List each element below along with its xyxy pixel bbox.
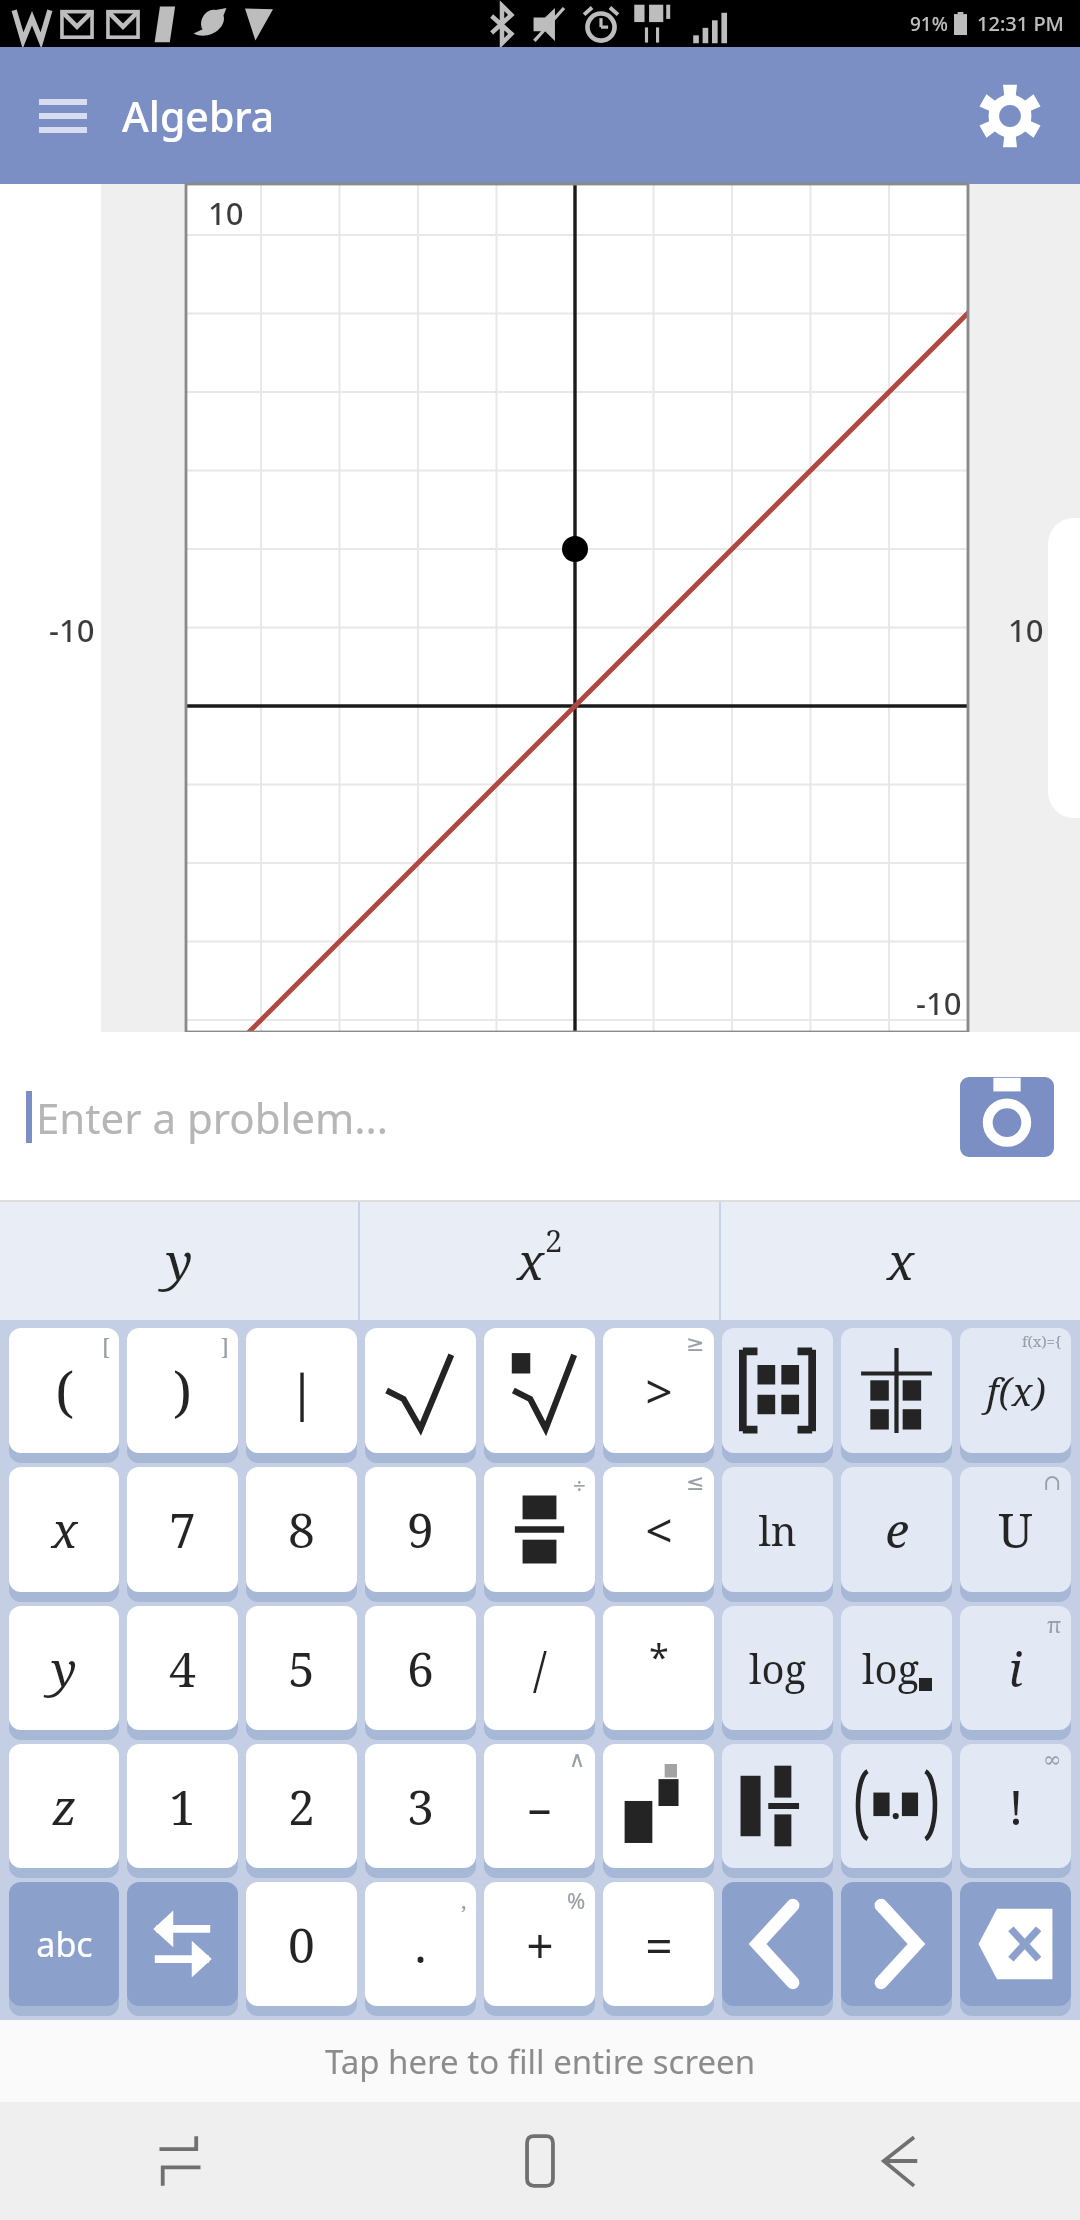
button[interactable]: 3 <box>365 1744 476 1868</box>
button[interactable]: Tap here to fill entire screen <box>0 2020 1080 2102</box>
button[interactable]: Scan problem with camera <box>960 1077 1054 1157</box>
staticText: 5 <box>288 1636 315 1701</box>
staticText: ( <box>55 1354 74 1428</box>
staticText: log <box>862 1641 919 1695</box>
staticText: 7 <box>169 1497 196 1562</box>
button[interactable]: Settings <box>966 72 1054 160</box>
staticText: 9 <box>407 1497 434 1562</box>
staticText: z <box>52 1774 77 1839</box>
staticText: ∧ <box>569 1747 586 1773</box>
button[interactable]: 8 <box>246 1467 357 1592</box>
button[interactable]: Enter a problem... <box>0 1032 1080 1202</box>
button[interactable]: log <box>722 1606 833 1730</box>
staticText: % <box>567 1885 586 1915</box>
button[interactable]: ÷ <box>484 1467 595 1592</box>
button[interactable]: , <box>365 1882 476 2006</box>
button[interactable]: Back <box>720 2102 1080 2220</box>
button[interactable]: 2 <box>246 1744 357 1868</box>
staticText: π <box>1047 1609 1062 1639</box>
staticText: > <box>645 1358 673 1423</box>
staticText: = <box>645 1912 673 1977</box>
staticText: – <box>527 1774 552 1839</box>
button[interactable]: x <box>721 1202 1080 1320</box>
staticText: 3 <box>407 1774 434 1839</box>
button[interactable] <box>841 1882 952 2006</box>
button[interactable]: Home <box>360 2102 720 2220</box>
button[interactable]: ln <box>722 1467 833 1592</box>
button[interactable]: z <box>9 1744 119 1868</box>
button[interactable]: Open navigation menu <box>26 79 100 153</box>
staticText: e <box>885 1497 909 1562</box>
button[interactable]: 4 <box>127 1606 238 1730</box>
button[interactable]: π <box>960 1606 1071 1730</box>
button[interactable] <box>841 1328 952 1453</box>
staticText: x <box>51 1497 78 1562</box>
button[interactable] <box>722 1744 833 1868</box>
staticText: 1 <box>169 1774 196 1839</box>
staticText: ∩ <box>1043 1470 1062 1496</box>
staticText: f(x) <box>986 1365 1046 1417</box>
button[interactable]: = <box>603 1882 714 2006</box>
button[interactable]: y <box>9 1606 119 1730</box>
button[interactable]: log <box>841 1606 952 1730</box>
button[interactable]: ∞ <box>960 1744 1071 1868</box>
staticText: x <box>887 1227 915 1295</box>
staticText: 2 <box>288 1774 315 1839</box>
button[interactable]: x <box>360 1202 719 1320</box>
button[interactable]: | <box>246 1328 357 1453</box>
button[interactable] <box>722 1882 833 2006</box>
staticText: 4 <box>169 1636 196 1701</box>
staticText: , <box>461 1885 467 1915</box>
button[interactable] <box>365 1328 476 1453</box>
staticText: log <box>749 1641 806 1695</box>
staticText: [ <box>102 1331 110 1361</box>
staticText: x <box>517 1227 545 1295</box>
button[interactable] <box>960 1882 1071 2006</box>
staticText: 12:31 PM <box>977 10 1064 37</box>
staticText: ∞ <box>1043 1747 1062 1773</box>
button[interactable]: ≤ <box>603 1467 714 1592</box>
staticText: 8 <box>288 1497 315 1562</box>
button[interactable] <box>484 1328 595 1453</box>
staticText: ! <box>1008 1774 1024 1839</box>
button[interactable]: / <box>484 1606 595 1730</box>
button[interactable]: f(x)={ <box>960 1328 1071 1453</box>
button[interactable]: % <box>484 1882 595 2006</box>
button[interactable]: abc <box>9 1882 119 2006</box>
staticText: ) <box>173 1354 192 1428</box>
button[interactable] <box>127 1882 238 2006</box>
staticText: f(x)={ <box>1022 1331 1062 1351</box>
staticText: 6 <box>407 1636 434 1701</box>
button[interactable]: * <box>603 1606 714 1730</box>
staticText: 10 <box>1008 609 1044 651</box>
button[interactable]: ∧ <box>484 1744 595 1868</box>
button[interactable] <box>603 1744 714 1868</box>
button[interactable] <box>841 1744 952 1868</box>
staticText: 0 <box>288 1912 315 1977</box>
staticText: < <box>645 1497 673 1562</box>
button[interactable]: 0 <box>246 1882 357 2006</box>
button[interactable]: 7 <box>127 1467 238 1592</box>
staticText: ] <box>221 1331 229 1361</box>
button[interactable]: [ <box>9 1328 119 1453</box>
staticText: . <box>414 1912 427 1977</box>
staticText: Tap here to fill entire screen <box>325 2039 756 2084</box>
button[interactable]: ≥ <box>603 1328 714 1453</box>
button[interactable]: e <box>841 1467 952 1592</box>
staticText: * <box>649 1632 669 1681</box>
button[interactable]: 9 <box>365 1467 476 1592</box>
button[interactable]: 5 <box>246 1606 357 1730</box>
staticText: / <box>533 1636 547 1701</box>
button[interactable]: ∩ <box>960 1467 1071 1592</box>
button[interactable]: y <box>0 1202 358 1320</box>
button[interactable]: 6 <box>365 1606 476 1730</box>
staticText: U <box>998 1497 1033 1562</box>
button[interactable]: ] <box>127 1328 238 1453</box>
button[interactable]: x <box>9 1467 119 1592</box>
staticText: Algebra <box>122 88 275 144</box>
staticText: 10 <box>208 192 244 234</box>
button[interactable] <box>722 1328 833 1453</box>
button[interactable]: 1 <box>127 1744 238 1868</box>
button[interactable]: Recents <box>0 2102 360 2220</box>
